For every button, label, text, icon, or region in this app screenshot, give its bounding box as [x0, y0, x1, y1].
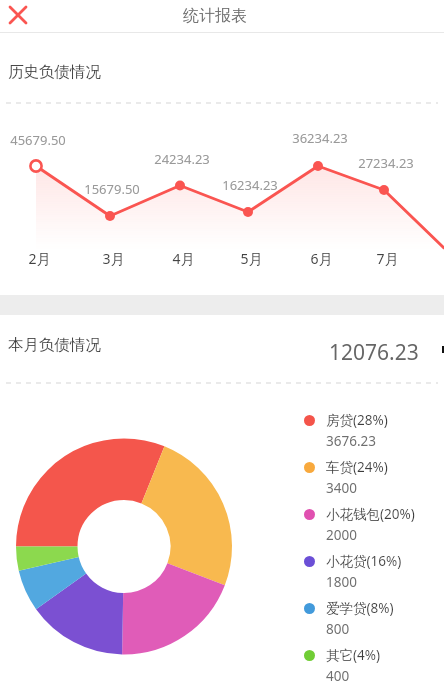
staticText: 小花贷(16%) — [326, 552, 402, 570]
staticText: 其它(4%) — [326, 646, 381, 664]
staticText: 15679.50 — [84, 180, 140, 198]
staticText: 45679.50 — [10, 131, 66, 149]
staticText: 3676.23 — [326, 432, 376, 450]
staticText: 6月 — [310, 249, 333, 268]
staticText: 3月 — [102, 249, 125, 268]
staticText: 历史负债情况 — [8, 62, 101, 82]
staticText: 5月 — [240, 249, 263, 268]
staticText: 房贷(28%) — [326, 411, 388, 429]
button[interactable] — [3, 0, 33, 29]
staticText: 小花钱包(20%) — [326, 505, 415, 523]
staticText: 爱学贷(8%) — [326, 599, 394, 617]
staticText: 7月 — [376, 249, 399, 268]
staticText: 本月负债情况 — [8, 335, 101, 355]
staticText: 36234.23 — [292, 129, 348, 147]
staticText: 2000 — [326, 526, 357, 544]
staticText: 24234.23 — [154, 150, 210, 168]
staticText: 4月 — [172, 249, 195, 268]
staticText: 统计报表 — [183, 6, 247, 26]
staticText: 车贷(24%) — [326, 458, 388, 476]
staticText: 2月 — [28, 249, 51, 268]
staticText: 400 — [326, 667, 350, 685]
staticText: 800 — [326, 620, 350, 638]
staticText: 16234.23 — [222, 176, 278, 194]
staticText: 3400 — [326, 479, 357, 497]
staticText: 27234.23 — [358, 154, 414, 172]
staticText: 1800 — [326, 573, 357, 591]
staticText: 12076.23 — [329, 338, 419, 366]
